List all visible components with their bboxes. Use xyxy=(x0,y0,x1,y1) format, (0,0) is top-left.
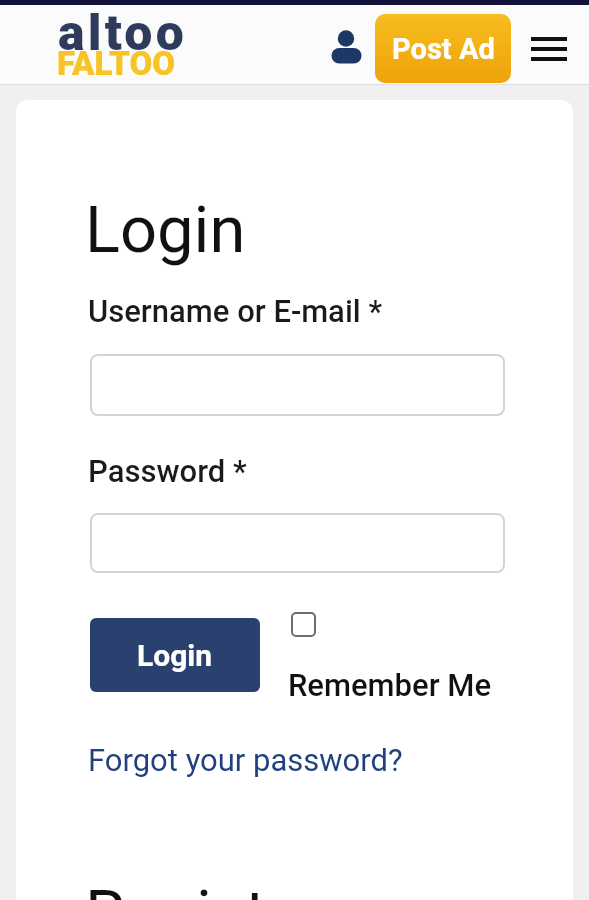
staticText: altoo xyxy=(58,4,187,63)
button[interactable] xyxy=(291,612,316,637)
button[interactable] xyxy=(331,29,362,69)
staticText: Login xyxy=(137,638,213,673)
button[interactable] xyxy=(90,513,505,573)
button[interactable] xyxy=(531,37,567,61)
staticText: Username or E-mail * xyxy=(88,293,383,329)
button[interactable] xyxy=(90,354,505,416)
button[interactable]: Login xyxy=(90,618,260,692)
staticText: Password * xyxy=(88,453,247,489)
staticText: FALTOO xyxy=(57,44,175,83)
staticText: Register xyxy=(85,876,324,900)
button[interactable]: Post Ad xyxy=(375,14,511,83)
staticText: Login xyxy=(85,192,246,268)
button[interactable]: Forgot your password? xyxy=(88,742,403,778)
staticText: Remember Me xyxy=(288,667,492,703)
staticText: Post Ad xyxy=(392,32,495,66)
